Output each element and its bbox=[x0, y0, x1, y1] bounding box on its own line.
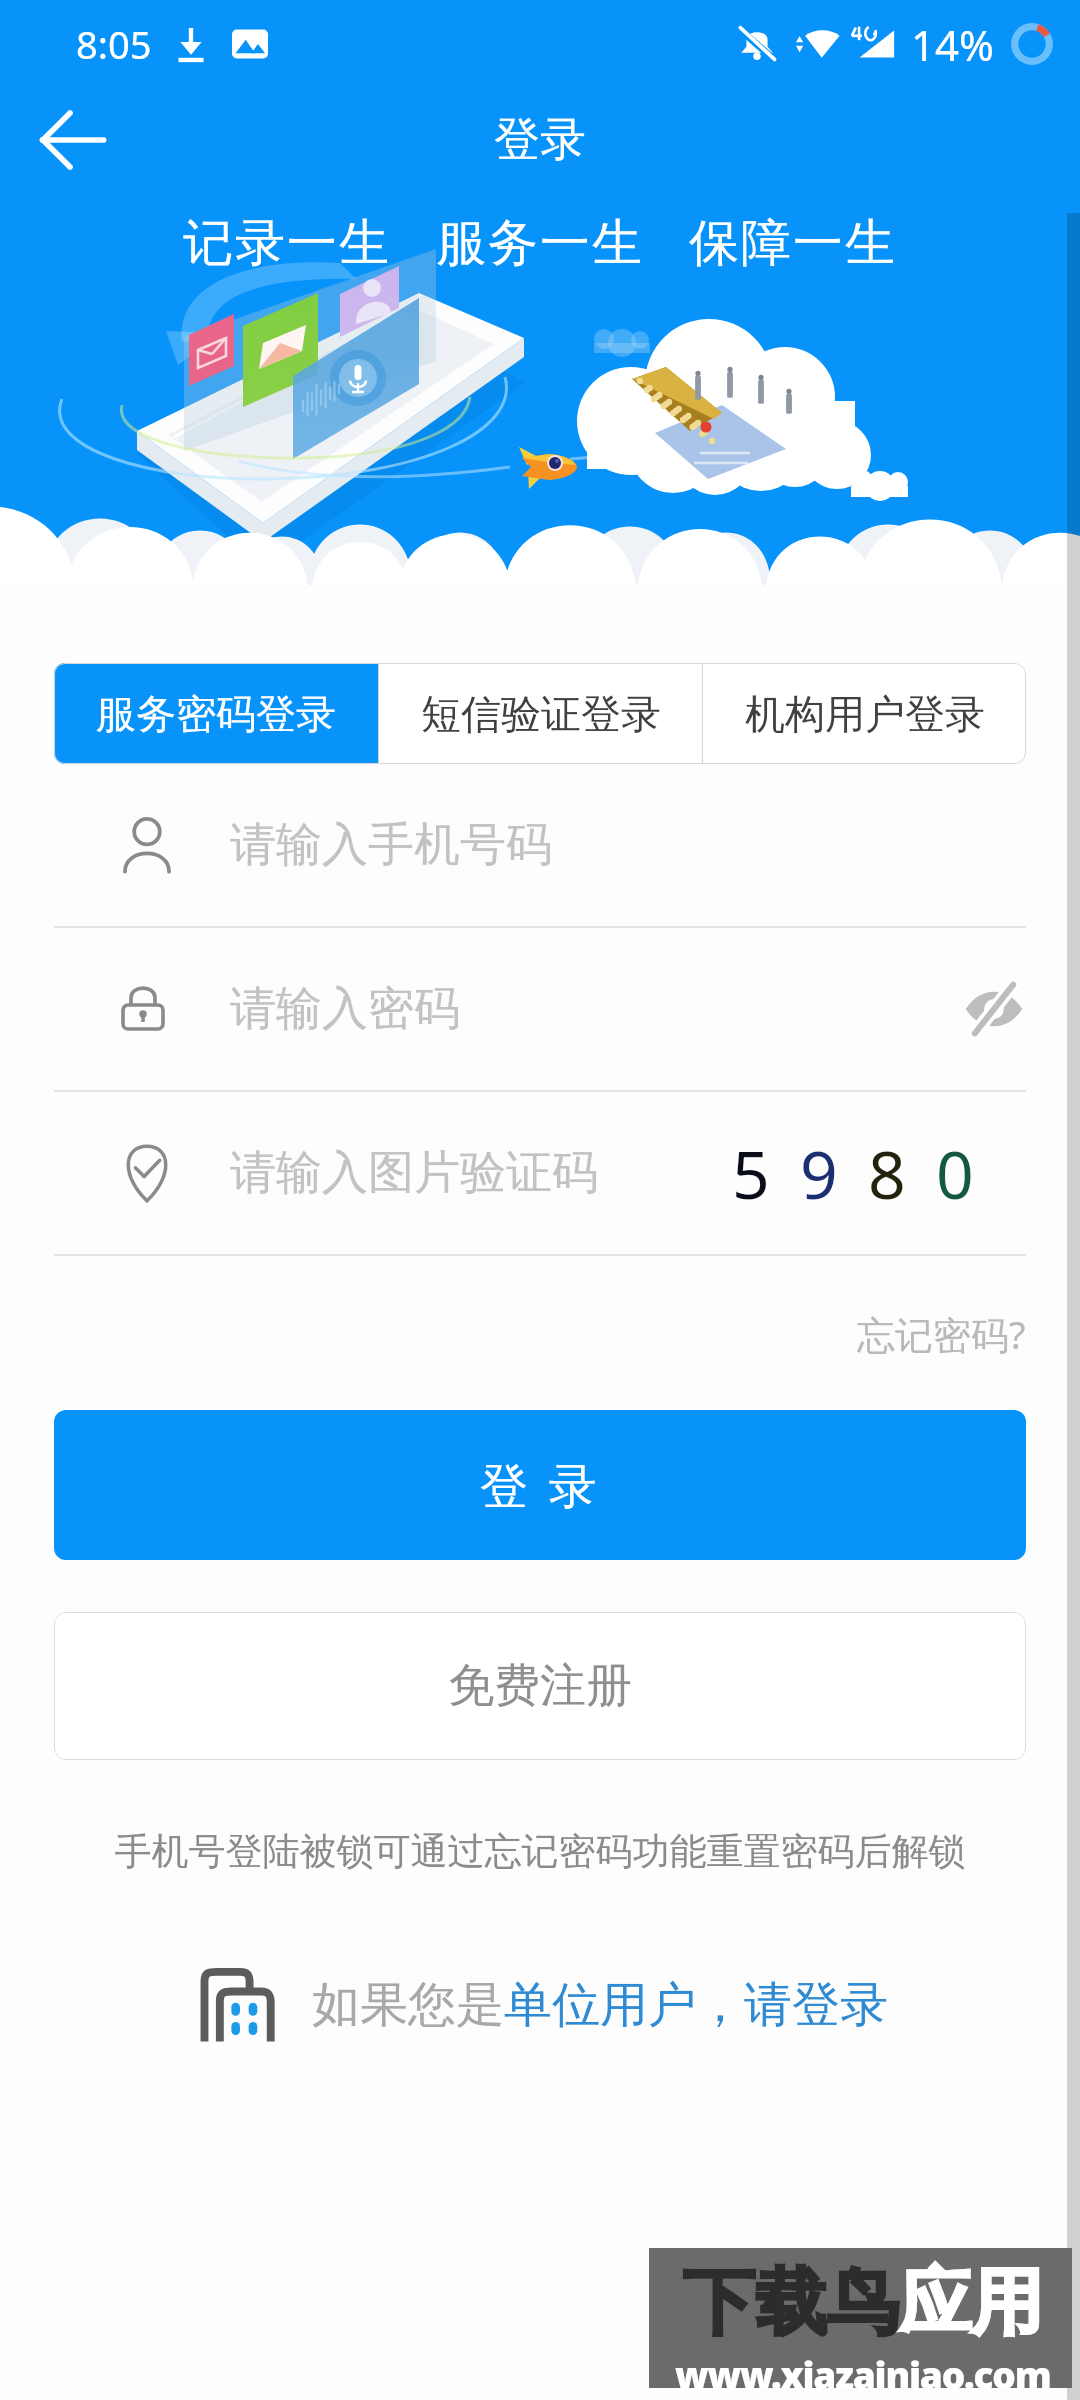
button[interactable]: 服务密码登录 bbox=[54, 663, 378, 764]
staticText: 0 bbox=[936, 1128, 974, 1218]
staticText: www.xiazainiao.com bbox=[675, 2349, 1051, 2388]
button[interactable]: 如果您是单位用户，请登录 bbox=[0, 1957, 1080, 2053]
button[interactable]: 免费注册 bbox=[54, 1612, 1026, 1760]
button[interactable]: Back bbox=[18, 88, 126, 191]
staticText: 服务密码登录 bbox=[96, 689, 336, 739]
staticText: 如果您是单位用户，请登录 bbox=[312, 1975, 888, 2035]
staticText: 14% bbox=[911, 16, 994, 73]
staticText: 登录 bbox=[494, 111, 586, 169]
staticText: 请输入密码 bbox=[230, 980, 460, 1038]
staticText: 登 录 bbox=[480, 1452, 601, 1518]
staticText: 记录一生 服务一生 保障一生 bbox=[183, 207, 897, 275]
staticText: 8 bbox=[868, 1128, 906, 1218]
staticText: 请输入手机号码 bbox=[230, 816, 552, 874]
button[interactable]: 机构用户登录 bbox=[703, 663, 1026, 764]
staticText: 5 bbox=[732, 1128, 770, 1218]
button[interactable]: 忘记密码? bbox=[849, 1300, 1034, 1368]
button[interactable]: Show password bbox=[962, 977, 1026, 1041]
staticText: 请输入图片验证码 bbox=[230, 1144, 598, 1202]
staticText: 下载鸟应用 bbox=[683, 2258, 1043, 2349]
button[interactable]: 短信验证登录 bbox=[379, 663, 702, 764]
staticText: 手机号登陆被锁可通过忘记密码功能重置密码后解锁 bbox=[0, 1828, 1080, 1875]
staticText: 免费注册 bbox=[448, 1657, 632, 1715]
staticText: 机构用户登录 bbox=[745, 689, 985, 739]
button[interactable]: 5 bbox=[732, 1128, 974, 1218]
button[interactable]: 登 录 bbox=[54, 1410, 1026, 1560]
staticText: 9 bbox=[800, 1128, 838, 1218]
staticText: 短信验证登录 bbox=[421, 689, 661, 739]
staticText: 8:05 bbox=[76, 18, 152, 70]
